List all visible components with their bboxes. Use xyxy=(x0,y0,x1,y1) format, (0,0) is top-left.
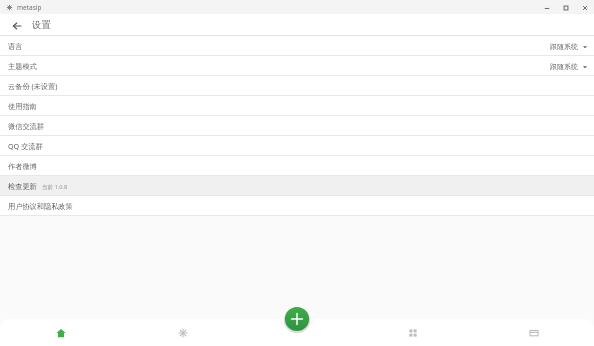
staticText: 主题模式 xyxy=(8,62,37,71)
button[interactable]: 检查更新 xyxy=(0,176,594,196)
button[interactable]: 使用指南 xyxy=(0,96,594,116)
staticText: 语言 xyxy=(8,42,23,51)
staticText: 微信交流群 xyxy=(8,122,44,131)
button[interactable]: Home xyxy=(0,319,122,346)
button[interactable]: Maximize xyxy=(560,2,571,13)
button[interactable]: Grid xyxy=(352,319,473,346)
staticText: 当前 1.0.8 xyxy=(42,183,68,191)
staticText: 跟随系统 xyxy=(550,62,578,71)
staticText: 检查更新 xyxy=(8,182,37,191)
staticText: 跟随系统 xyxy=(550,42,578,51)
button[interactable]: 用户协议和隐私政策 xyxy=(0,196,594,216)
button[interactable]: Back xyxy=(8,17,25,34)
staticText: 设置 xyxy=(32,19,51,31)
button[interactable]: Discover xyxy=(122,319,243,346)
button[interactable]: 作者微博 xyxy=(0,156,594,176)
staticText: 作者微博 xyxy=(8,162,37,171)
button[interactable]: QQ 交流群 xyxy=(0,136,594,156)
button[interactable]: Add xyxy=(284,306,310,332)
staticText: metasip xyxy=(17,3,42,12)
staticText: 用户协议和隐私政策 xyxy=(8,202,73,211)
button[interactable]: 跟随系统 xyxy=(550,62,588,71)
button[interactable]: 跟随系统 xyxy=(550,42,588,51)
button[interactable]: 主题模式 xyxy=(0,56,594,76)
staticText: 云备份 (未设置) xyxy=(8,81,58,91)
button[interactable]: 云备份 (未设置) xyxy=(0,76,594,96)
button[interactable]: 微信交流群 xyxy=(0,116,594,136)
button[interactable]: Minimize xyxy=(541,2,552,13)
button[interactable]: Close xyxy=(579,2,590,13)
staticText: 使用指南 xyxy=(8,102,37,111)
button[interactable]: 语言 xyxy=(0,36,594,56)
button[interactable]: Files xyxy=(473,319,594,346)
staticText: QQ 交流群 xyxy=(8,141,43,151)
